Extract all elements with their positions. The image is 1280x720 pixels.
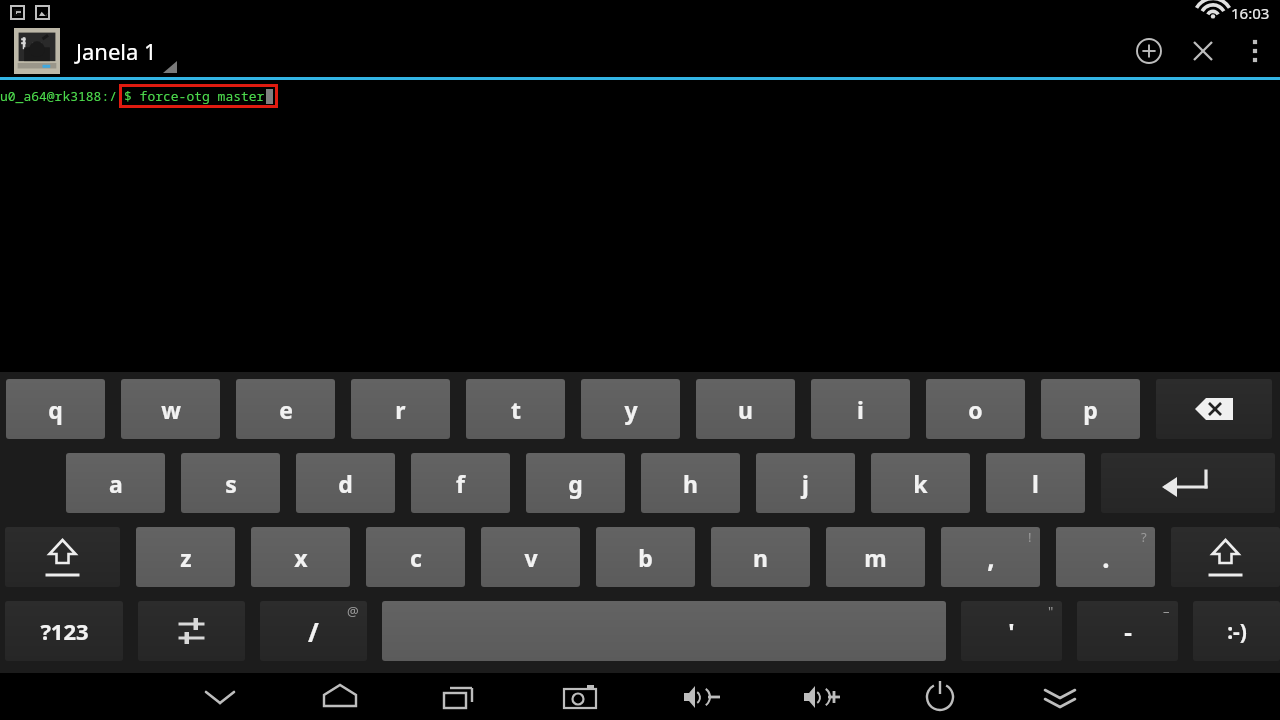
staticText: j bbox=[802, 468, 809, 499]
button[interactable]: Volume up bbox=[760, 673, 880, 720]
button[interactable]: Backspace bbox=[1156, 379, 1272, 439]
staticText: z bbox=[180, 542, 192, 573]
staticText: q bbox=[48, 394, 63, 425]
button[interactable]: s bbox=[181, 453, 280, 513]
button[interactable]: t bbox=[466, 379, 565, 439]
button[interactable]: w bbox=[121, 379, 220, 439]
button[interactable]: – bbox=[1077, 601, 1178, 661]
button[interactable]: r bbox=[351, 379, 450, 439]
button[interactable]: l bbox=[986, 453, 1085, 513]
button[interactable]: Close window bbox=[1176, 25, 1230, 77]
staticText: x bbox=[294, 542, 308, 573]
staticText: – bbox=[1163, 602, 1170, 620]
staticText: b bbox=[638, 542, 653, 573]
staticText: m bbox=[864, 542, 887, 573]
staticText: a bbox=[109, 468, 123, 499]
button[interactable]: Home bbox=[280, 673, 400, 720]
staticText: ! bbox=[1028, 528, 1032, 546]
button[interactable]: q bbox=[6, 379, 105, 439]
button[interactable]: b bbox=[596, 527, 695, 587]
staticText: h bbox=[683, 468, 698, 499]
button[interactable]: " bbox=[961, 601, 1062, 661]
staticText: $ force-otg master bbox=[124, 87, 265, 105]
button[interactable]: g bbox=[526, 453, 625, 513]
staticText: c bbox=[410, 542, 422, 573]
button[interactable]: x bbox=[251, 527, 350, 587]
button[interactable]: New window bbox=[1122, 25, 1176, 77]
button[interactable]: ! bbox=[941, 527, 1040, 587]
staticText: - bbox=[1124, 615, 1132, 648]
button[interactable]: e bbox=[236, 379, 335, 439]
other: Screenshot notification bbox=[34, 4, 51, 21]
staticText: / bbox=[308, 614, 319, 649]
button[interactable]: v bbox=[481, 527, 580, 587]
staticText: 16:03 bbox=[1231, 3, 1270, 23]
staticText: Janela 1 bbox=[76, 36, 157, 66]
staticText: d bbox=[338, 468, 353, 499]
button[interactable]: Power bbox=[880, 673, 1000, 720]
staticText: @ bbox=[347, 602, 359, 620]
button[interactable]: n bbox=[711, 527, 810, 587]
button[interactable]: h bbox=[641, 453, 740, 513]
staticText: f bbox=[456, 468, 465, 499]
staticText: r bbox=[395, 394, 406, 425]
staticText: p bbox=[1083, 394, 1098, 425]
staticText: . bbox=[1102, 540, 1110, 575]
button[interactable]: z bbox=[136, 527, 235, 587]
staticText: u bbox=[738, 394, 753, 425]
button[interactable]: :-) bbox=[1193, 601, 1280, 661]
other: Terminal notification bbox=[9, 4, 26, 21]
button[interactable]: ? bbox=[1056, 527, 1155, 587]
button[interactable]: Hide keyboard bbox=[160, 673, 280, 720]
button[interactable]: y bbox=[581, 379, 680, 439]
staticText: e bbox=[279, 394, 293, 425]
button[interactable]: u bbox=[696, 379, 795, 439]
button[interactable]: a bbox=[66, 453, 165, 513]
button[interactable]: More options bbox=[1230, 25, 1280, 77]
staticText: i bbox=[857, 394, 864, 425]
button[interactable]: Volume down bbox=[640, 673, 760, 720]
button[interactable]: o bbox=[926, 379, 1025, 439]
button[interactable]: j bbox=[756, 453, 855, 513]
button[interactable]: p bbox=[1041, 379, 1140, 439]
staticText: " bbox=[1048, 602, 1054, 620]
button[interactable]: Screenshot bbox=[520, 673, 640, 720]
staticText: u0_a64@rk3188:/ bbox=[0, 87, 118, 105]
staticText: l bbox=[1032, 468, 1039, 499]
button[interactable]: Input settings bbox=[138, 601, 245, 661]
staticText: ?123 bbox=[40, 616, 89, 646]
button[interactable]: ?123 bbox=[5, 601, 123, 661]
staticText: g bbox=[568, 468, 583, 499]
button[interactable]: c bbox=[366, 527, 465, 587]
button[interactable]: d bbox=[296, 453, 395, 513]
staticText: s bbox=[225, 468, 237, 499]
button[interactable]: i bbox=[811, 379, 910, 439]
staticText: ' bbox=[1008, 615, 1015, 648]
button[interactable]: Recent apps bbox=[400, 673, 520, 720]
button[interactable]: Enter bbox=[1101, 453, 1275, 513]
staticText: n bbox=[753, 542, 768, 573]
button[interactable]: Shift bbox=[1171, 527, 1280, 587]
button[interactable]: m bbox=[826, 527, 925, 587]
staticText: k bbox=[913, 468, 928, 499]
staticText: ? bbox=[1141, 528, 1147, 546]
button[interactable]: k bbox=[871, 453, 970, 513]
staticText: v bbox=[524, 542, 538, 573]
staticText: w bbox=[161, 394, 181, 425]
staticText: , bbox=[987, 540, 995, 575]
button[interactable]: f bbox=[411, 453, 510, 513]
staticText: :-) bbox=[1227, 617, 1247, 646]
button[interactable]: Collapse bbox=[1000, 673, 1120, 720]
staticText: y bbox=[624, 394, 638, 425]
button[interactable]: Shift bbox=[5, 527, 120, 587]
staticText: t bbox=[511, 394, 521, 425]
button[interactable]: @ bbox=[260, 601, 367, 661]
staticText: o bbox=[968, 394, 983, 425]
